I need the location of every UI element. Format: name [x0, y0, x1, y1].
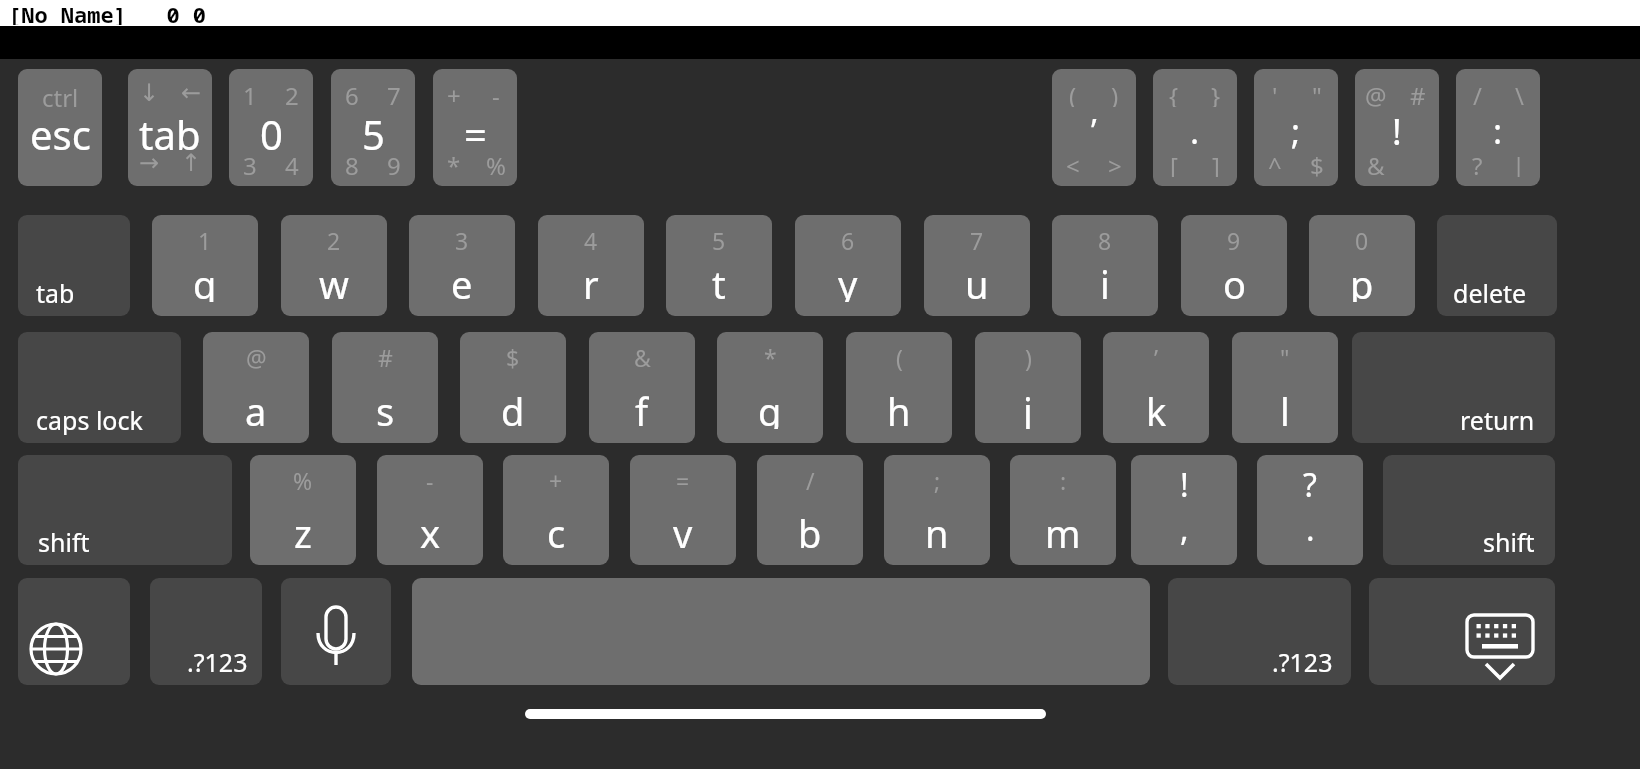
staticText: 2	[327, 225, 341, 255]
button[interactable]: !	[1131, 455, 1237, 565]
button[interactable]: (	[1052, 69, 1136, 186]
button[interactable]: 1	[229, 69, 313, 186]
staticText: -	[492, 79, 500, 107]
button[interactable]: 6	[331, 69, 415, 186]
button[interactable]: {	[1153, 69, 1237, 186]
staticText: 7	[387, 79, 401, 107]
staticText: #	[378, 342, 393, 372]
staticText: 7	[970, 225, 984, 255]
staticText: \	[1515, 79, 1524, 107]
staticText: 0	[1355, 225, 1369, 255]
button[interactable]: return	[1352, 332, 1555, 443]
button[interactable]: ?	[1257, 455, 1363, 565]
button[interactable]: shift	[18, 455, 232, 565]
button[interactable]: =	[630, 455, 736, 565]
button[interactable]: *	[717, 332, 823, 443]
staticText: ←	[181, 79, 202, 107]
button[interactable]: ’	[1103, 332, 1209, 443]
staticText: esc	[30, 107, 91, 155]
staticText: 2	[285, 79, 299, 107]
button[interactable]: Switch keyboard	[18, 578, 130, 685]
staticText: s	[376, 385, 395, 429]
staticText: tab	[36, 276, 75, 308]
button[interactable]: .?123	[150, 578, 262, 685]
staticText: w	[319, 258, 349, 302]
staticText: /	[1473, 79, 1482, 107]
button[interactable]: 5	[666, 215, 772, 316]
button[interactable]: #	[332, 332, 438, 443]
button[interactable]: -	[377, 455, 483, 565]
button[interactable]: 9	[1181, 215, 1287, 316]
staticText: ,	[1180, 507, 1189, 551]
button[interactable]: 8	[1052, 215, 1158, 316]
staticText: j	[1023, 385, 1033, 429]
staticText: ;	[934, 465, 941, 495]
staticText: !	[1180, 463, 1189, 501]
staticText: o	[1223, 258, 1246, 302]
staticText: shift	[1483, 525, 1535, 557]
button[interactable]: delete	[1437, 215, 1557, 316]
staticText: &	[1367, 149, 1385, 177]
staticText: ctrl	[42, 81, 79, 109]
button[interactable]: /	[757, 455, 863, 565]
staticText: *	[764, 342, 777, 372]
button[interactable]: +	[433, 69, 517, 186]
staticText: r	[583, 258, 599, 302]
button[interactable]: tab	[18, 215, 130, 316]
staticText: "	[1312, 79, 1322, 107]
button[interactable]: @	[1355, 69, 1439, 186]
staticText: /	[806, 465, 815, 495]
staticText: g	[758, 385, 782, 429]
button[interactable]: 3	[409, 215, 515, 316]
staticText: i	[1100, 258, 1110, 302]
button[interactable]: Dictation	[281, 578, 391, 685]
staticText: v	[673, 507, 693, 551]
staticText: 4	[285, 149, 299, 177]
staticText: →	[139, 149, 160, 177]
staticText: )	[1025, 342, 1032, 372]
staticText: h	[887, 385, 911, 429]
button[interactable]: '	[1254, 69, 1338, 186]
staticText: 9	[1227, 225, 1241, 255]
button[interactable]: @	[203, 332, 309, 443]
button[interactable]: :	[1010, 455, 1116, 565]
button[interactable]: (	[846, 332, 952, 443]
staticText: 9	[387, 149, 401, 177]
button[interactable]: Hide keyboard	[1369, 578, 1555, 685]
button[interactable]: $	[460, 332, 566, 443]
button[interactable]: 6	[795, 215, 901, 316]
staticText: a	[245, 385, 267, 429]
staticText: t	[712, 258, 726, 302]
staticText: ↓	[139, 79, 160, 107]
button[interactable]: +	[503, 455, 609, 565]
button[interactable]: 4	[538, 215, 644, 316]
staticText: %	[486, 149, 506, 177]
button[interactable]: 7	[924, 215, 1030, 316]
button[interactable]: ctrl	[18, 69, 102, 186]
button[interactable]: caps lock	[18, 332, 181, 443]
button[interactable]: ;	[884, 455, 990, 565]
staticText: +	[447, 79, 461, 107]
staticText: 0	[260, 107, 283, 155]
button[interactable]: )	[975, 332, 1081, 443]
button[interactable]: %	[250, 455, 356, 565]
staticText: delete	[1453, 276, 1527, 308]
button[interactable]: shift	[1383, 455, 1555, 565]
staticText: 5	[712, 225, 726, 255]
staticText: tab	[139, 107, 201, 155]
staticText: 8	[345, 149, 359, 177]
button[interactable]: &	[589, 332, 695, 443]
staticText: ]	[1212, 149, 1220, 177]
button[interactable]: 0	[1309, 215, 1415, 316]
staticText: ^	[1268, 149, 1282, 177]
button[interactable]: .?123	[1168, 578, 1351, 685]
staticText: 6	[345, 79, 359, 107]
button[interactable]: 2	[281, 215, 387, 316]
staticText: "	[1280, 342, 1290, 372]
button[interactable]: 1	[152, 215, 258, 316]
staticText: z	[294, 507, 312, 551]
button[interactable]: /	[1456, 69, 1540, 186]
button[interactable]: "	[1232, 332, 1338, 443]
button[interactable]: ↓	[128, 69, 212, 186]
